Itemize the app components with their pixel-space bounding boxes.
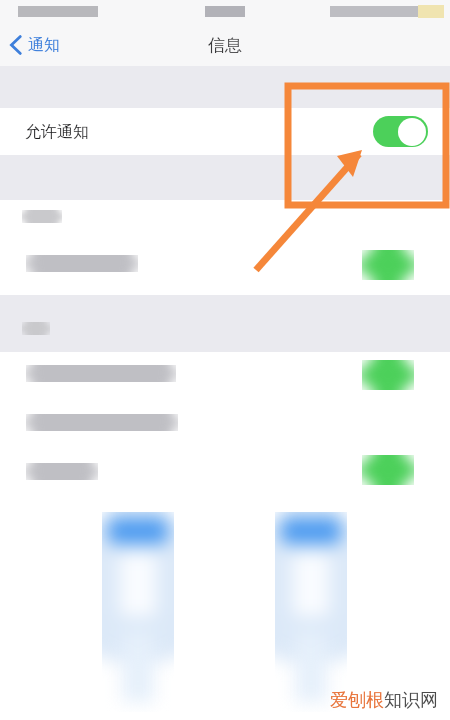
- staticText: 信息: [208, 35, 242, 56]
- button[interactable]: 通知: [0, 29, 72, 61]
- button[interactable]: 允许通知开关: [373, 116, 428, 147]
- staticText: 知识网: [384, 689, 438, 712]
- button[interactable]: 允许通知: [0, 108, 450, 155]
- staticText: 爱刨根: [330, 689, 384, 712]
- staticText: 允许通知: [25, 122, 89, 142]
- staticText: 通知: [28, 35, 60, 55]
